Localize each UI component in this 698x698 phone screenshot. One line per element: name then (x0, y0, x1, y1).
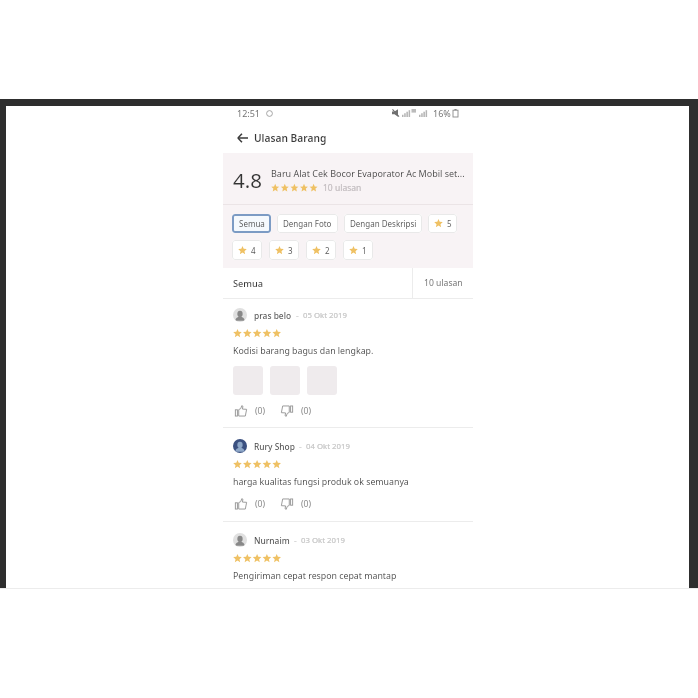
staticText: Baru Alat Cek Bocor Evaporator Ac Mobil … (271, 167, 466, 179)
staticText: - (294, 535, 297, 546)
button[interactable]: 3 (269, 240, 299, 260)
staticText: Semua (233, 277, 264, 290)
staticText: Dengan Deskripsi (350, 218, 417, 229)
staticText: Semua (239, 218, 265, 229)
button[interactable]: 4 (232, 240, 262, 260)
button[interactable]: Semua (223, 268, 412, 298)
staticText: - (299, 441, 302, 452)
staticText: 10 ulasan (424, 277, 463, 289)
staticText: 4.8 (233, 166, 262, 194)
staticText: 04 Okt 2019 (306, 441, 350, 452)
staticText: harga kualitas fungsi produk ok semuanya (233, 476, 409, 488)
button[interactable]: 4.8 (223, 153, 473, 204)
button[interactable]: 10 ulasan (413, 268, 473, 298)
button[interactable]: Semua (232, 214, 271, 233)
button[interactable]: Like (0) (235, 403, 266, 419)
staticText: 1 (362, 245, 367, 256)
staticText: Rury Shop (254, 441, 295, 452)
staticText: Dengan Foto (283, 218, 332, 229)
button[interactable]: Dislike (0) (281, 496, 312, 512)
staticText: (0) (301, 405, 312, 417)
staticText: (0) (255, 498, 266, 510)
staticText: Nurnaim (254, 535, 290, 546)
staticText: (0) (301, 498, 312, 510)
button[interactable]: 2 (306, 240, 336, 260)
staticText: Kodisi barang bagus dan lengkap. (233, 345, 374, 357)
button[interactable]: Like (0) (235, 496, 266, 512)
staticText: - (296, 310, 299, 321)
staticText: 16% (433, 107, 451, 119)
staticText: 4 (251, 245, 256, 256)
staticText: 10 ulasan (323, 182, 362, 194)
staticText: Ulasan Barang (254, 131, 327, 145)
button[interactable]: Back (234, 130, 250, 146)
staticText: 2 (325, 245, 330, 256)
staticText: pras belo (254, 310, 292, 321)
staticText: 12:51 (237, 107, 261, 119)
button[interactable]: 5 (428, 214, 457, 233)
staticText: 3 (288, 245, 293, 256)
staticText: 5 (447, 218, 452, 229)
staticText: Pengiriman cepat respon cepat mantap (233, 570, 397, 582)
staticText: (0) (255, 405, 266, 417)
button[interactable]: Dengan Deskripsi (344, 214, 422, 233)
button[interactable]: Dengan Foto (277, 214, 338, 233)
staticText: 03 Okt 2019 (301, 535, 345, 546)
button[interactable]: 1 (343, 240, 373, 260)
staticText: 05 Okt 2019 (303, 310, 347, 321)
button[interactable]: Dislike (0) (281, 403, 312, 419)
